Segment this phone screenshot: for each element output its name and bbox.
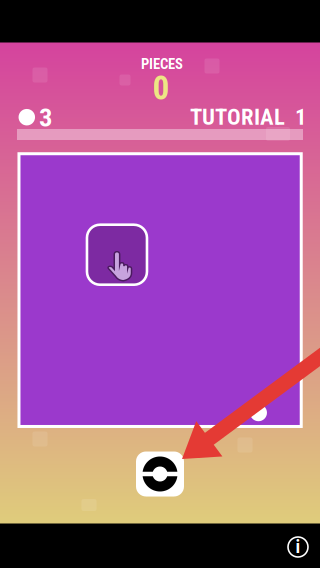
staticText: 3	[39, 102, 52, 133]
staticText: 0	[152, 68, 169, 108]
button[interactable]: Place piece	[136, 451, 184, 496]
button[interactable]: Info	[284, 533, 312, 561]
staticText: PIECES	[141, 55, 183, 73]
staticText: TUTORIAL 1	[190, 104, 306, 130]
staticText: i	[295, 536, 300, 557]
